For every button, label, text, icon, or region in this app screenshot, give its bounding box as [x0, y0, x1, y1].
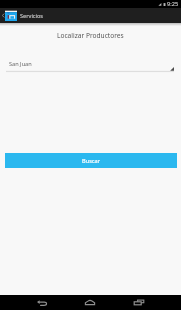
staticText: Buscar — [82, 157, 100, 165]
staticText: Servicios — [20, 12, 44, 20]
staticText: Localizar Productores — [57, 31, 124, 40]
button[interactable]: Navigate up — [0, 8, 5, 23]
button[interactable]: Buscar — [5, 153, 177, 168]
staticText: San Juan — [9, 60, 32, 68]
button[interactable]: Recent apps — [127, 295, 151, 310]
button[interactable]: Home — [78, 295, 102, 310]
button[interactable]: San Juan — [6, 58, 174, 73]
button[interactable]: Back — [30, 295, 54, 310]
staticText: 9:25 — [167, 0, 179, 8]
